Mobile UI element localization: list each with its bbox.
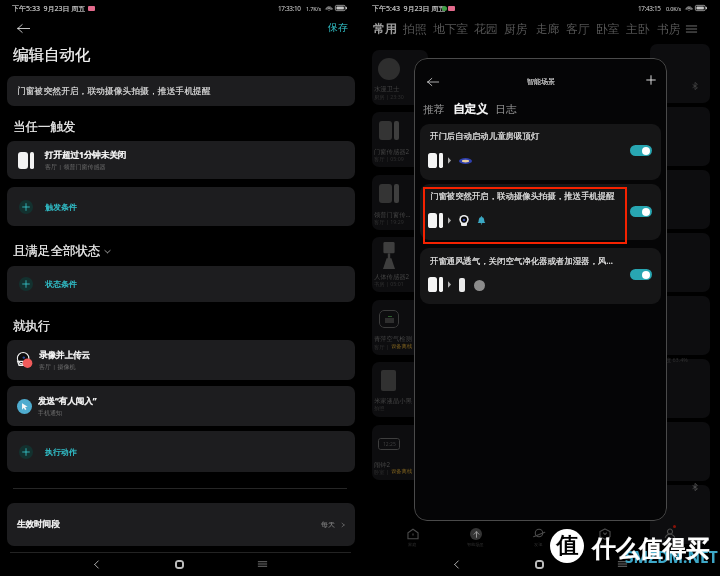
staticText: 花园: [474, 22, 498, 37]
staticText: 拍照: [374, 405, 385, 412]
button[interactable]: 厨房: [502, 20, 530, 38]
button[interactable]: Back: [443, 552, 469, 576]
staticText: 客厅: [566, 22, 590, 37]
staticText: 1.7K/s: [306, 5, 321, 13]
button[interactable]: 12:25: [372, 425, 428, 480]
staticText: 当任一触发: [13, 119, 76, 135]
staticText: 下午5:43 9月23日 周五: [372, 4, 446, 14]
button[interactable]: 门窗传感器2: [372, 112, 428, 167]
button[interactable]: [630, 269, 652, 280]
staticText: 卧室: [596, 22, 620, 37]
button[interactable]: 日志: [493, 101, 519, 119]
button[interactable]: 客厅: [564, 20, 592, 38]
staticText: 书房 | 05:01: [374, 280, 404, 287]
staticText: 卧室 |: [374, 468, 391, 475]
staticText: 发现: [534, 542, 543, 547]
button[interactable]: 生效时间段: [7, 503, 355, 546]
button[interactable]: 执行动作: [7, 431, 355, 472]
button[interactable]: Add scene: [642, 71, 660, 89]
staticText: 温度 63.4%: [660, 356, 688, 364]
staticText: 保存: [328, 21, 348, 34]
button[interactable]: 家庭: [396, 525, 428, 549]
button[interactable]: 推荐: [421, 101, 447, 119]
staticText: 值: [556, 532, 578, 560]
button[interactable]: Home: [526, 552, 552, 576]
staticText: 水漫卫士: [374, 85, 400, 93]
staticText: 书房: [657, 22, 681, 37]
button[interactable]: 常用: [371, 20, 399, 38]
staticText: 青萍空气检测: [374, 335, 412, 343]
staticText: 门窗被突然开启，联动摄像头拍摄，推送手机提醒: [430, 191, 615, 202]
staticText: 地下室: [433, 22, 469, 37]
button[interactable]: 领普门窗传…: [372, 175, 428, 230]
button[interactable]: Menu: [682, 20, 700, 38]
button[interactable]: Recents: [249, 552, 275, 576]
button[interactable]: 水漫卫士: [372, 50, 428, 105]
button[interactable]: 发现: [522, 525, 554, 549]
button[interactable]: 发送“有人闯入”: [7, 386, 355, 426]
staticText: 每天: [321, 520, 335, 529]
button[interactable]: 自定义: [451, 100, 490, 119]
staticText: 开窗通风透气，关闭空气净化器或者加湿器，风…: [430, 255, 613, 266]
staticText: 触发条件: [45, 202, 77, 212]
button[interactable]: 打开超过1分钟未关闭: [7, 141, 355, 179]
button[interactable]: 地下室: [431, 20, 471, 38]
staticText: 设备离线: [391, 343, 413, 350]
staticText: 手机通知: [38, 409, 62, 417]
button[interactable]: 门窗被突然开启，联动摄像头拍摄，推送手机提醒: [7, 76, 355, 106]
staticText: 米家液晶小黑: [374, 397, 412, 405]
button[interactable]: 触发条件: [7, 187, 355, 226]
staticText: 厨房 | 23:30: [374, 93, 404, 100]
staticText: 闹钟2: [374, 460, 391, 469]
button[interactable]: 我的: [653, 525, 685, 549]
staticText: 17:43:15: [638, 4, 661, 13]
button[interactable]: 录像并上传云: [7, 340, 355, 380]
staticText: 打开超过1分钟未关闭: [45, 149, 127, 161]
staticText: 我的: [665, 542, 674, 547]
button[interactable]: 开门后自动启动儿童房吸顶灯: [420, 124, 661, 180]
staticText: 客厅 | 19:29: [374, 218, 404, 225]
staticText: 开门后自动启动儿童房吸顶灯: [430, 131, 540, 142]
staticText: 设备离线: [391, 468, 413, 475]
button[interactable]: 开窗通风透气，关闭空气净化器或者加湿器，风…: [420, 248, 661, 304]
button[interactable]: 走廊: [534, 20, 562, 38]
staticText: 度: [660, 231, 666, 238]
staticText: 常用: [373, 22, 397, 37]
staticText: 领普门窗传…: [374, 210, 411, 219]
staticText: SMZDM.NET: [625, 546, 718, 567]
button[interactable]: Recents: [609, 552, 635, 576]
staticText: 就执行: [13, 318, 51, 334]
button[interactable]: Back: [11, 16, 35, 40]
button[interactable]: 商城: [588, 525, 620, 549]
button[interactable]: 米家液晶小黑: [372, 362, 428, 417]
button[interactable]: 书房: [655, 20, 683, 38]
staticText: 发送“有人闯入”: [38, 395, 97, 407]
button[interactable]: 状态条件: [7, 266, 355, 302]
button[interactable]: 花园: [472, 20, 500, 38]
button[interactable]: Back: [83, 552, 109, 576]
button[interactable]: 门窗被突然开启，联动摄像头拍摄，推送手机提醒: [420, 184, 661, 240]
button[interactable]: 青萍空气检测: [372, 300, 428, 355]
staticText: 客厅 | 领普门窗传感器: [45, 163, 106, 171]
button[interactable]: 主卧: [624, 20, 652, 38]
staticText: 商城: [600, 542, 609, 547]
staticText: 0.0K/s: [666, 5, 681, 13]
button[interactable]: 卧室: [594, 20, 622, 38]
button[interactable]: Back: [422, 71, 444, 93]
staticText: 编辑自动化: [13, 45, 91, 65]
staticText: 录像并上传云: [39, 350, 90, 361]
staticText: 12:25: [383, 441, 396, 448]
staticText: 下午5:33 9月23日 周五: [12, 4, 86, 14]
button[interactable]: 智能场景: [459, 525, 491, 549]
staticText: 执行动作: [45, 447, 77, 457]
button[interactable]: [630, 206, 652, 217]
staticText: 状态条件: [45, 279, 77, 289]
staticText: 日志: [495, 103, 517, 117]
button[interactable]: 人体传感器2: [372, 237, 428, 292]
button[interactable]: 拍照: [401, 20, 429, 38]
staticText: 自定义: [453, 102, 488, 117]
staticText: 走廊: [536, 22, 560, 37]
button[interactable]: 保存: [322, 17, 354, 37]
button[interactable]: [630, 145, 652, 156]
button[interactable]: Home: [166, 552, 192, 576]
